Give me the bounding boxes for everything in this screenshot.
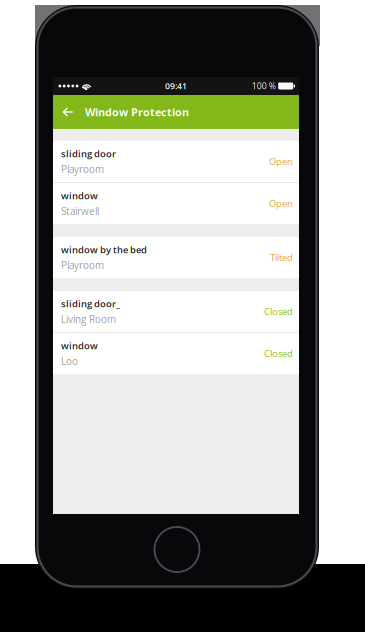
staticText: Loo <box>61 354 78 368</box>
staticText: window by the bed <box>61 243 147 256</box>
staticText: window <box>61 189 98 202</box>
staticText: sliding door_ <box>61 297 120 310</box>
staticText: Open <box>269 197 293 210</box>
staticText: Tilted <box>270 251 293 264</box>
staticText: Playroom <box>61 162 104 176</box>
staticText: Open <box>269 155 293 168</box>
staticText: window <box>61 339 98 352</box>
button[interactable]: sliding door_ <box>53 291 299 332</box>
staticText: 09:41 <box>165 80 187 92</box>
staticText: Stairwell <box>61 204 99 218</box>
staticText: 100 % <box>252 80 276 92</box>
button[interactable]: Back <box>54 95 82 129</box>
staticText: Playroom <box>61 258 104 272</box>
staticText: Window Protection <box>85 105 189 119</box>
button[interactable]: window by the bed <box>53 237 299 278</box>
button[interactable]: sliding door <box>53 141 299 182</box>
button[interactable]: window <box>53 183 299 224</box>
staticText: Closed <box>264 305 293 318</box>
button[interactable]: window <box>53 333 299 374</box>
staticText: Living Room <box>61 312 116 326</box>
staticText: sliding door <box>61 147 116 160</box>
staticText: Closed <box>264 347 293 360</box>
